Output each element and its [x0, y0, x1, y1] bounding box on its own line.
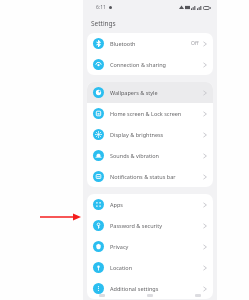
staticText: Sounds & vibration	[110, 152, 203, 159]
staticText: Notifications & status bar	[110, 173, 203, 180]
button[interactable]: Display & brightness	[87, 124, 213, 145]
button[interactable]: Sounds & vibration	[87, 145, 213, 166]
button[interactable]: Home screen & Lock screen	[87, 103, 213, 124]
staticText: Additional settings	[110, 285, 203, 292]
staticText: Privacy	[110, 243, 203, 250]
button[interactable]: Notifications & status bar	[87, 166, 213, 187]
button[interactable]: Privacy	[87, 236, 213, 257]
staticText: Apps	[110, 201, 203, 208]
staticText: Display & brightness	[110, 131, 203, 138]
button[interactable]: Password & security	[87, 215, 213, 236]
button[interactable]: Wallpapers & style	[87, 82, 213, 103]
staticText: Connection & sharing	[110, 61, 203, 68]
button[interactable]: Bluetooth	[87, 33, 213, 54]
button[interactable]: Additional settings	[87, 278, 213, 299]
staticText: Location	[110, 264, 203, 271]
staticText: Settings	[91, 19, 116, 28]
staticText: Off	[191, 40, 199, 47]
staticText: Home screen & Lock screen	[110, 110, 203, 117]
staticText: Password & security	[110, 222, 203, 229]
staticText: Bluetooth	[110, 40, 191, 47]
button[interactable]: Location	[87, 257, 213, 278]
button[interactable]: Connection & sharing	[87, 54, 213, 75]
staticText: 6:11	[96, 4, 106, 11]
staticText: Wallpapers & style	[110, 89, 203, 96]
button[interactable]: Apps	[87, 194, 213, 215]
